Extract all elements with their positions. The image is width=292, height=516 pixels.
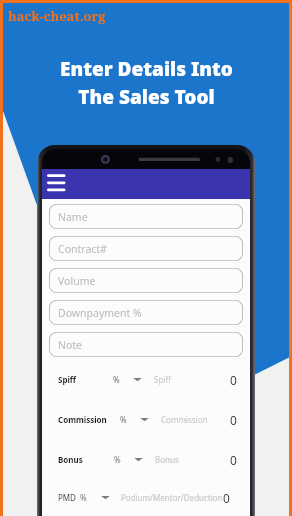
staticText: %	[113, 374, 120, 385]
staticText: Bonus	[58, 454, 83, 465]
staticText: PMD	[58, 492, 76, 503]
button[interactable]: Volume	[49, 268, 243, 293]
staticText: Volume	[58, 274, 96, 288]
staticText: Spiff	[58, 374, 77, 385]
staticText: %	[120, 414, 127, 425]
button[interactable]: Downpayment %	[49, 300, 243, 325]
staticText: Commission	[161, 414, 208, 425]
staticText: Enter Details Into	[60, 56, 233, 82]
staticText: Downpayment %	[58, 306, 142, 320]
staticText: Contract#	[58, 242, 107, 256]
staticText: 0	[230, 372, 237, 386]
staticText: Spiff	[154, 374, 171, 385]
button[interactable]: Contract#	[49, 236, 243, 261]
staticText: 0	[230, 412, 237, 426]
button[interactable]: Open navigation menu	[47, 172, 69, 195]
staticText: 0	[230, 452, 237, 466]
staticText: %	[80, 492, 87, 503]
button[interactable]: PMD	[42, 490, 250, 504]
staticText: 0	[223, 490, 230, 504]
staticText: Name	[58, 210, 88, 224]
staticText: The Sales Tool	[78, 84, 215, 110]
button[interactable]: Note	[49, 332, 243, 357]
button[interactable]: Bonus	[42, 452, 250, 466]
staticText: Podium/Mentor/Deduction	[121, 492, 223, 503]
button[interactable]: Commission	[42, 412, 250, 426]
staticText: %	[114, 454, 121, 465]
staticText: hack-cheat.org	[8, 7, 106, 25]
staticText: Note	[58, 338, 83, 352]
staticText: Commission	[58, 414, 107, 425]
button[interactable]: Spiff	[42, 372, 250, 386]
button[interactable]: Name	[49, 204, 243, 229]
staticText: Bonus	[155, 454, 179, 465]
